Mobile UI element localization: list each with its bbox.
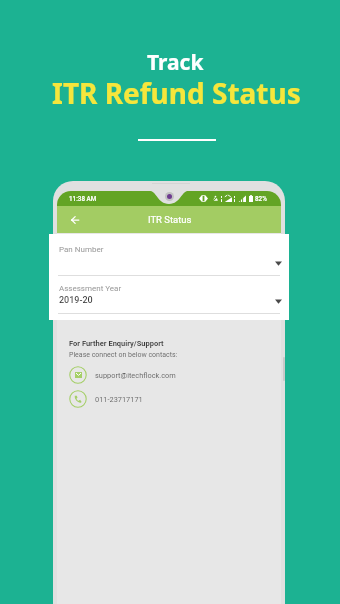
staticText: 011-23717171 — [95, 395, 143, 404]
button[interactable]: Pan Number — [59, 245, 104, 254]
button[interactable]: Back — [65, 210, 85, 230]
staticText: Track — [147, 48, 204, 77]
button[interactable]: 011-23717171 — [69, 390, 143, 408]
button[interactable]: support@itechflock.com — [69, 366, 176, 384]
staticText: 2019-20 — [59, 295, 93, 306]
staticText: For Further Enquiry/Support — [69, 339, 164, 348]
staticText: ITR Status — [148, 214, 192, 225]
staticText: ITR Refund Status — [52, 74, 301, 112]
staticText: Please connect on below contacts: — [69, 351, 178, 359]
staticText: support@itechflock.com — [95, 371, 176, 380]
staticText: 11:38 AM — [69, 195, 97, 202]
staticText: Assessment Year — [59, 284, 122, 293]
staticText: 82% — [255, 195, 267, 202]
